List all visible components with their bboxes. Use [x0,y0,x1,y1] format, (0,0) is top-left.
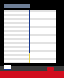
button[interactable] [4,65,11,70]
button[interactable]: Add [47,67,54,71]
